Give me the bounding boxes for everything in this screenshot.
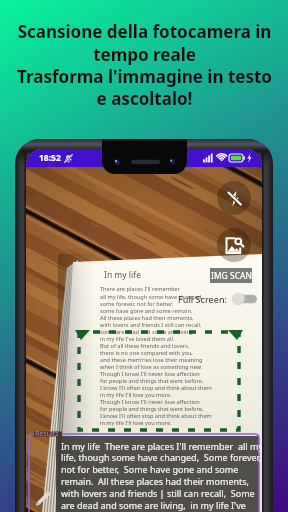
staticText: IMG SCAN: [211, 270, 252, 282]
button[interactable]: Edit: [35, 490, 51, 506]
staticText: There are places I'll remember all my li…: [100, 285, 250, 426]
button[interactable]: Flash off: [217, 181, 251, 215]
staticText: In my life: [104, 269, 141, 281]
staticText: Scansione della fotocamera in tempo real…: [17, 20, 272, 109]
button[interactable]: Image scan: [217, 228, 251, 262]
staticText: 18:52: [39, 152, 61, 164]
staticText: In my life There are places I'll remembe…: [61, 440, 262, 512]
button[interactable]: Full Screen:: [178, 292, 259, 306]
staticText: Full Screen:: [178, 293, 228, 305]
staticText: Results: [35, 429, 59, 439]
